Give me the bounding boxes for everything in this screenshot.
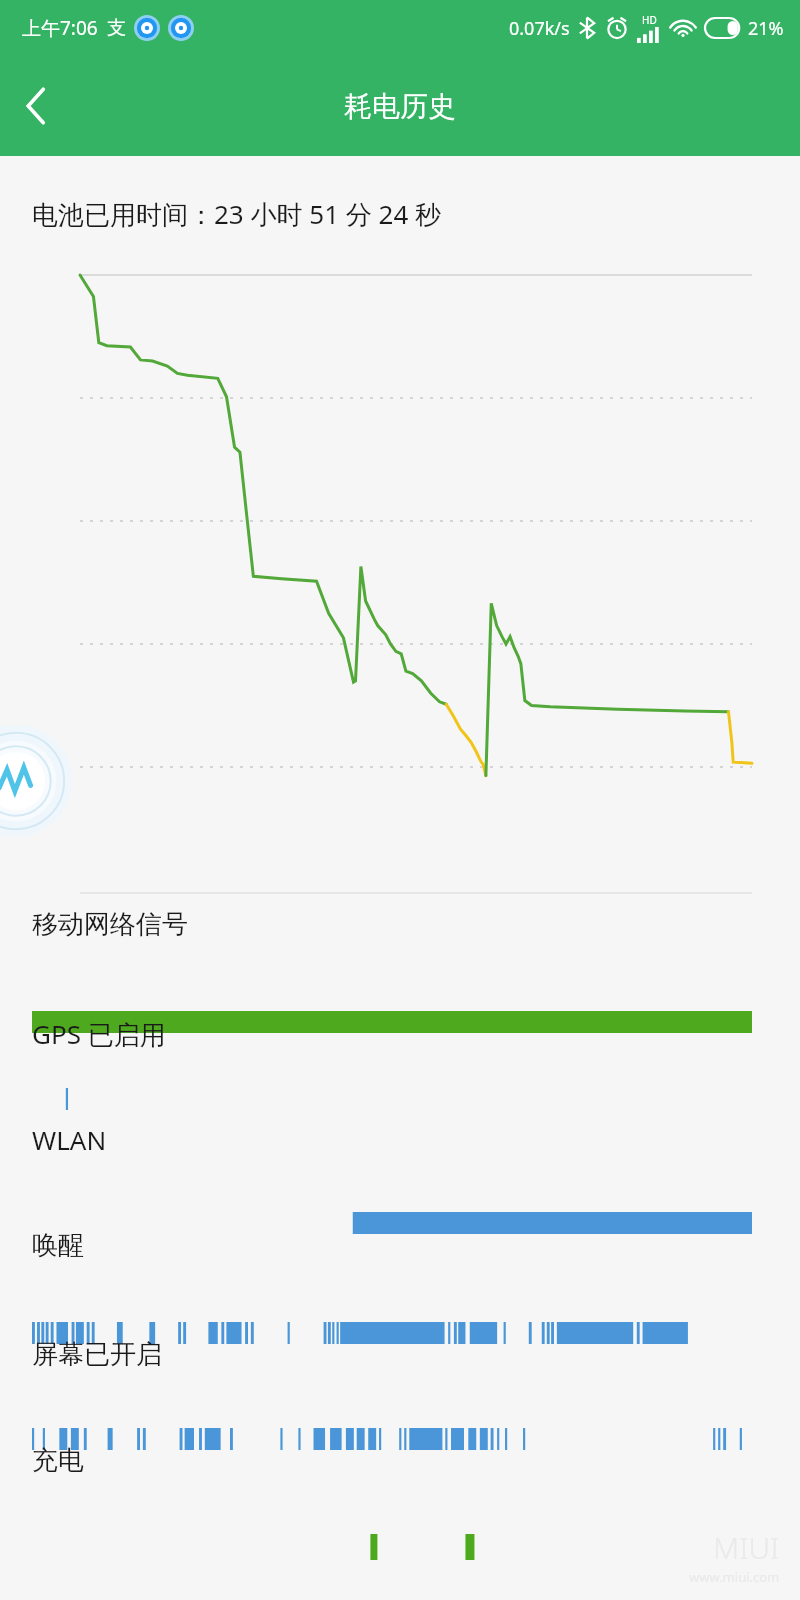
staticText: 屏幕已开启 <box>32 1338 162 1371</box>
staticText: 支 <box>107 16 126 40</box>
button[interactable]: Back <box>0 70 72 142</box>
staticText: MIUI <box>713 1527 780 1568</box>
staticText: 唤醒 <box>32 1229 84 1262</box>
staticText: 移动网络信号 <box>32 908 188 941</box>
staticText: 上午7:06 <box>22 15 98 41</box>
staticText: www.miui.com <box>689 1568 780 1586</box>
staticText: GPS 已启用 <box>32 1016 166 1052</box>
staticText: 电池已用时间：23 小时 51 分 24 秒 <box>32 196 442 232</box>
staticText: WLAN <box>32 1122 107 1157</box>
staticText: 0.07k/s <box>509 16 570 41</box>
staticText: 耗电历史 <box>344 89 456 124</box>
staticText: 充电 <box>32 1444 84 1477</box>
staticText: 21% <box>748 16 784 41</box>
staticText: HD <box>642 13 657 27</box>
